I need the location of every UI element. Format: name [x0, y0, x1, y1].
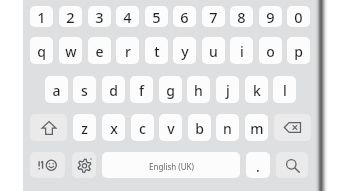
button[interactable]: 3 — [88, 6, 111, 27]
button[interactable]: i — [230, 37, 253, 64]
staticText: 9 — [266, 7, 275, 27]
button[interactable]: b — [188, 114, 211, 141]
button[interactable]: p — [287, 37, 310, 64]
staticText: 3 — [95, 7, 104, 27]
staticText: o — [266, 42, 275, 61]
button[interactable]: j — [216, 76, 239, 103]
staticText: u — [209, 42, 218, 61]
staticText: 5 — [152, 7, 161, 27]
button[interactable]: Search — [276, 152, 308, 178]
button[interactable]: Backspace — [274, 114, 311, 141]
button[interactable]: l — [273, 76, 296, 103]
staticText: g — [166, 81, 175, 100]
button[interactable]: a — [45, 76, 68, 103]
button[interactable]: 2 — [59, 6, 82, 27]
staticText: x — [110, 119, 118, 138]
staticText: p — [294, 42, 303, 61]
staticText: b — [195, 119, 204, 138]
staticText: 8 — [237, 7, 246, 27]
staticText: w — [65, 42, 77, 61]
button[interactable]: 7 — [202, 6, 225, 27]
button[interactable]: 1 — [30, 6, 53, 27]
button[interactable]: Shift — [30, 114, 67, 141]
button[interactable]: o — [259, 37, 282, 64]
button[interactable]: 5 — [145, 6, 168, 27]
staticText: d — [109, 81, 118, 100]
staticText: h — [194, 81, 203, 100]
button[interactable]: n — [216, 114, 239, 141]
button[interactable]: k — [245, 76, 268, 103]
button[interactable]: c — [131, 114, 154, 141]
staticText: English (UK) — [149, 161, 194, 172]
button[interactable]: 6 — [173, 6, 196, 27]
staticText: i — [240, 42, 244, 61]
staticText: l — [283, 81, 287, 100]
button[interactable]: v — [159, 114, 182, 141]
button[interactable]: g — [159, 76, 182, 103]
staticText: t — [154, 42, 160, 61]
button[interactable]: . — [246, 152, 270, 178]
button[interactable]: x — [102, 114, 125, 141]
button[interactable]: Settings — [72, 152, 96, 178]
staticText: a — [52, 81, 61, 100]
button[interactable]: z — [73, 114, 96, 141]
staticText: k — [253, 81, 261, 100]
staticText: q — [37, 42, 46, 61]
staticText: 7 — [209, 7, 218, 27]
button[interactable]: y — [173, 37, 196, 64]
staticText: s — [81, 81, 88, 100]
staticText: z — [81, 119, 88, 138]
button[interactable]: t — [145, 37, 168, 64]
button[interactable]: e — [88, 37, 111, 64]
staticText: f — [139, 81, 144, 100]
button[interactable]: f — [130, 76, 153, 103]
staticText: e — [95, 42, 104, 61]
staticText: 1 — [37, 7, 46, 27]
button[interactable]: 0 — [287, 6, 310, 27]
button[interactable]: 9 — [259, 6, 282, 27]
button[interactable]: w — [59, 37, 82, 64]
button[interactable]: 8 — [230, 6, 253, 27]
button[interactable]: h — [187, 76, 210, 103]
button[interactable]: q — [30, 37, 53, 64]
button[interactable]: s — [73, 76, 96, 103]
button[interactable]: Symbols — [30, 152, 65, 178]
staticText: 6 — [180, 7, 189, 27]
staticText: 2 — [66, 7, 75, 27]
staticText: . — [256, 157, 260, 176]
button[interactable]: m — [245, 114, 268, 141]
staticText: r — [125, 42, 131, 61]
button[interactable]: 4 — [116, 6, 139, 27]
staticText: 4 — [123, 7, 132, 27]
staticText: m — [250, 119, 264, 138]
staticText: v — [167, 119, 175, 138]
button[interactable]: r — [116, 37, 139, 64]
button[interactable]: English (UK) — [102, 152, 240, 178]
staticText: c — [139, 119, 146, 138]
staticText: 0 — [294, 7, 303, 27]
staticText: j — [226, 81, 230, 100]
button[interactable]: d — [102, 76, 125, 103]
staticText: y — [181, 42, 189, 61]
button[interactable]: u — [202, 37, 225, 64]
staticText: n — [223, 119, 232, 138]
